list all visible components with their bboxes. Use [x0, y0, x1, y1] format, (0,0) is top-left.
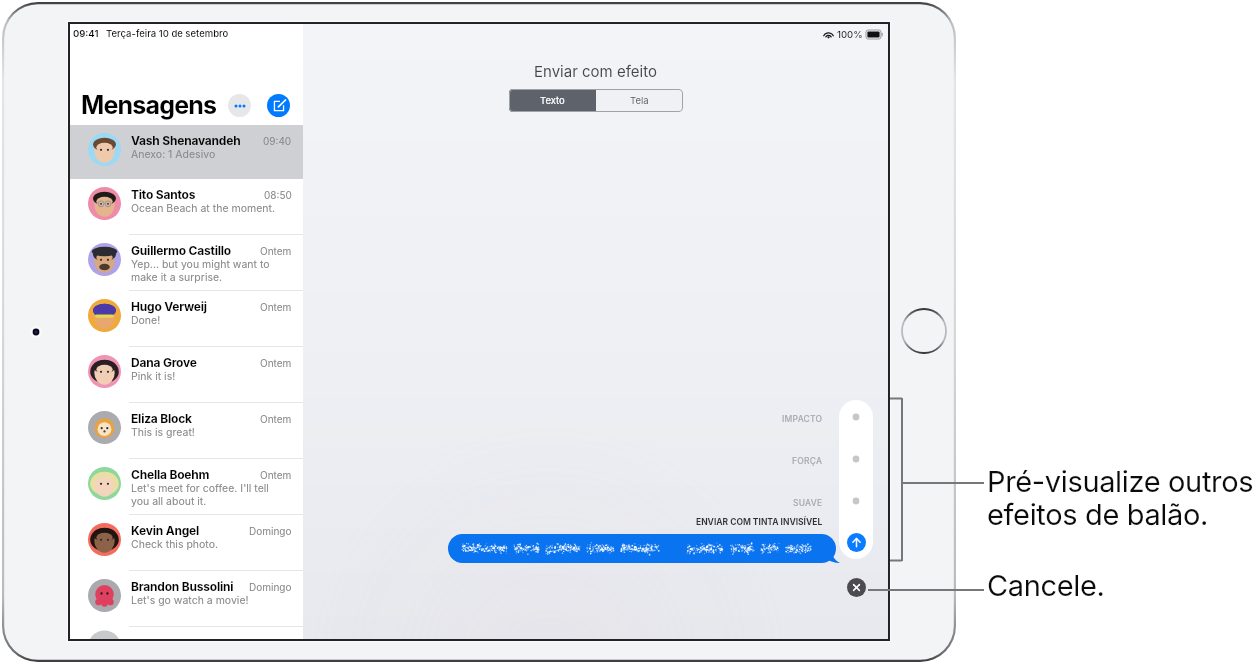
staticText: Brandon Bussolini — [131, 579, 234, 594]
staticText: IMPACTO — [782, 414, 823, 424]
staticText: Terça-feira 10 de setembro — [106, 28, 229, 39]
button[interactable]: Eliza Block — [70, 403, 303, 459]
staticText: Cancele. — [987, 568, 1105, 603]
button[interactable]: Hugo Verweij — [70, 291, 303, 347]
staticText: Dana Grove — [131, 355, 197, 370]
staticText: Ontem — [260, 245, 292, 257]
button[interactable]: Texto — [509, 89, 596, 112]
button[interactable]: Kevin Angel — [70, 515, 303, 571]
staticText: Let's go watch a movie! — [131, 594, 249, 607]
staticText: Ontem — [260, 469, 292, 481]
button[interactable]: Guillermo Castillo — [70, 235, 303, 291]
staticText: you all about it. — [131, 495, 207, 508]
staticText: Chella Boehm — [131, 467, 210, 482]
button[interactable]: Tito Santos — [70, 179, 303, 235]
staticText: Yep... but you might want to — [131, 258, 270, 271]
staticText: Enviar com efeito — [534, 62, 657, 80]
staticText: Ontem — [260, 301, 292, 313]
button[interactable]: Tela — [596, 89, 683, 112]
staticText: Tela — [630, 95, 649, 106]
staticText: 08:50 — [264, 189, 292, 201]
staticText: Ocean Beach at the moment. — [131, 202, 275, 215]
staticText: Hugo Verweij — [131, 299, 207, 314]
staticText: make it a surprise. — [131, 271, 223, 284]
button[interactable]: New message — [267, 94, 290, 117]
button[interactable]: Send — [847, 533, 866, 552]
button[interactable]: Brandon Bussolini — [70, 571, 303, 627]
staticText: 09:40 — [263, 135, 292, 147]
button[interactable]: Dana Grove — [70, 347, 303, 403]
staticText: FORÇA — [792, 456, 823, 466]
button[interactable]: Chella Boehm — [70, 459, 303, 515]
staticText: Domingo — [249, 581, 292, 593]
staticText: Ontem — [260, 357, 292, 369]
staticText: Vash Shenavandeh — [131, 133, 241, 148]
staticText: Let's meet for coffee. I'll tell — [131, 482, 269, 495]
staticText: 100% — [837, 29, 863, 40]
staticText: 09:41 — [73, 28, 99, 39]
staticText: Pink it is! — [131, 370, 176, 383]
button[interactable]: Cancel — [847, 578, 866, 597]
staticText: Kevin Angel — [131, 523, 200, 538]
staticText: Texto — [540, 95, 565, 106]
button[interactable]: More options — [228, 94, 251, 117]
staticText: ENVIAR COM TINTA INVISÍVEL — [696, 517, 823, 527]
button[interactable]: Vash Shenavandeh — [70, 125, 303, 179]
staticText: Ontem — [260, 413, 292, 425]
staticText: SUAVE — [793, 498, 823, 508]
staticText: Done! — [131, 314, 161, 327]
staticText: Eliza Block — [131, 411, 192, 426]
staticText: Mensagens — [81, 90, 217, 120]
staticText: Check this photo. — [131, 538, 218, 551]
staticText: Domingo — [249, 525, 292, 537]
staticText: Tito Santos — [131, 187, 196, 202]
staticText: This is great! — [131, 426, 195, 439]
staticText: Guillermo Castillo — [131, 243, 231, 258]
staticText: Pré-visualize outros efeitos de balão. — [987, 464, 1254, 532]
staticText: Anexo: 1 Adesivo — [131, 148, 216, 161]
